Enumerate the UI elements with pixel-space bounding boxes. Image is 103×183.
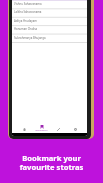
button[interactable]: Subrahmanya Bhujanga <box>12 34 87 42</box>
staticText: Lalitha Sahasranama <box>14 10 42 14</box>
button[interactable]: Vishnu Sahasranama <box>12 0 87 8</box>
button[interactable]: Home <box>15 122 33 131</box>
button[interactable]: Settings <box>67 122 84 131</box>
staticText: Hanuman Chalisa <box>14 27 38 31</box>
staticText: Aditya Hrudayam <box>14 19 37 23</box>
button[interactable]: Aditya Hrudayam <box>12 17 87 25</box>
button[interactable]: Hanuman Chalisa <box>12 25 87 33</box>
staticText: Bookmarks <box>35 129 48 132</box>
staticText: Vishnu Sahasranama <box>14 2 42 6</box>
staticText: Subrahmanya Bhujanga <box>14 36 46 40</box>
button[interactable]: Notes <box>50 122 67 131</box>
button[interactable]: Lalitha Sahasranama <box>12 8 87 16</box>
staticText: Bookmark your favourite stotras <box>0 153 103 172</box>
button[interactable]: Bookmarks <box>33 122 50 132</box>
